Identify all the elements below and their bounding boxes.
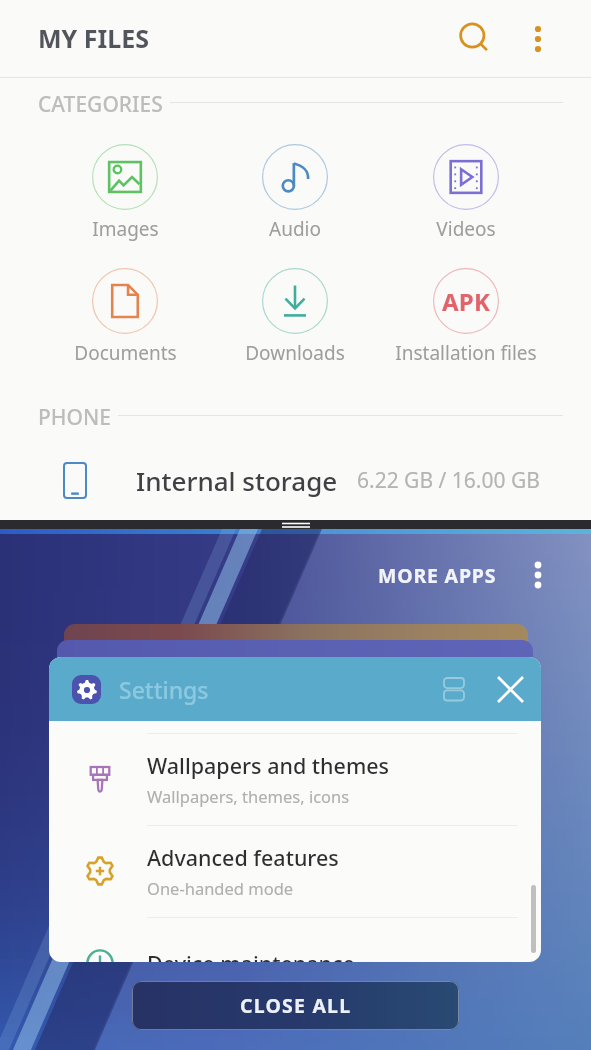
button[interactable]: Close xyxy=(485,664,535,714)
button[interactable]: Videos xyxy=(381,137,551,249)
staticText: APK xyxy=(442,285,491,318)
button[interactable]: APK xyxy=(381,261,551,373)
button[interactable]: Internal storage xyxy=(0,447,591,513)
staticText: One-handed mode xyxy=(147,877,294,899)
staticText: 6.22 GB / 16.00 GB xyxy=(357,466,540,495)
button[interactable]: Wallpapers and themes xyxy=(49,733,541,825)
staticText: Installation files xyxy=(395,340,537,366)
button[interactable]: Images xyxy=(40,137,210,249)
staticText: Advanced features xyxy=(147,843,339,872)
staticText: CLOSE ALL xyxy=(240,992,352,1019)
staticText: Wallpapers, themes, icons xyxy=(147,785,350,807)
staticText: Documents xyxy=(74,340,177,366)
button[interactable]: CLOSE ALL xyxy=(132,981,459,1030)
button[interactable]: More options xyxy=(512,549,564,601)
button[interactable]: MORE APPS xyxy=(370,554,505,596)
staticText: Settings xyxy=(119,674,209,705)
staticText: Videos xyxy=(436,216,496,242)
button[interactable]: Downloads xyxy=(210,261,380,373)
staticText: MY FILES xyxy=(38,21,149,55)
staticText: Audio xyxy=(269,216,321,242)
staticText: Images xyxy=(92,216,159,242)
button[interactable]: Advanced features xyxy=(49,825,541,917)
staticText: MORE APPS xyxy=(378,562,497,589)
button[interactable]: More options xyxy=(512,13,564,65)
staticText: PHONE xyxy=(38,403,111,427)
button[interactable]: Documents xyxy=(40,261,210,373)
button[interactable]: Search xyxy=(448,12,502,66)
staticText: Downloads xyxy=(245,340,345,366)
button[interactable]: Audio xyxy=(210,137,380,249)
staticText: Device maintenance xyxy=(147,949,355,962)
button[interactable]: Split screen xyxy=(431,666,477,712)
staticText: CATEGORIES xyxy=(38,90,163,114)
staticText: Internal storage xyxy=(136,463,338,498)
button[interactable]: Device maintenance xyxy=(49,917,541,962)
staticText: Wallpapers and themes xyxy=(147,751,390,780)
